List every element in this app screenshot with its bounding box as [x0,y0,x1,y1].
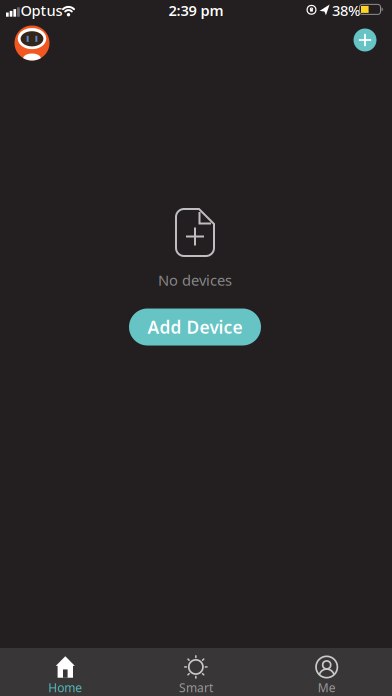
button[interactable]: Add Device [129,308,261,345]
staticText: Home [48,679,82,695]
button[interactable]: Smart [131,648,261,696]
staticText: Me [318,679,336,695]
button[interactable]: Profile [14,25,49,60]
staticText: No devices [158,270,232,290]
staticText: Smart [179,679,213,695]
staticText: 38% [332,1,360,20]
staticText: 2:39 pm [168,1,223,20]
staticText: Add Device [147,315,242,338]
button[interactable]: Add [353,28,376,51]
staticText: Optus [20,1,62,20]
button[interactable]: Home [0,648,130,696]
button[interactable]: Me [262,648,392,696]
